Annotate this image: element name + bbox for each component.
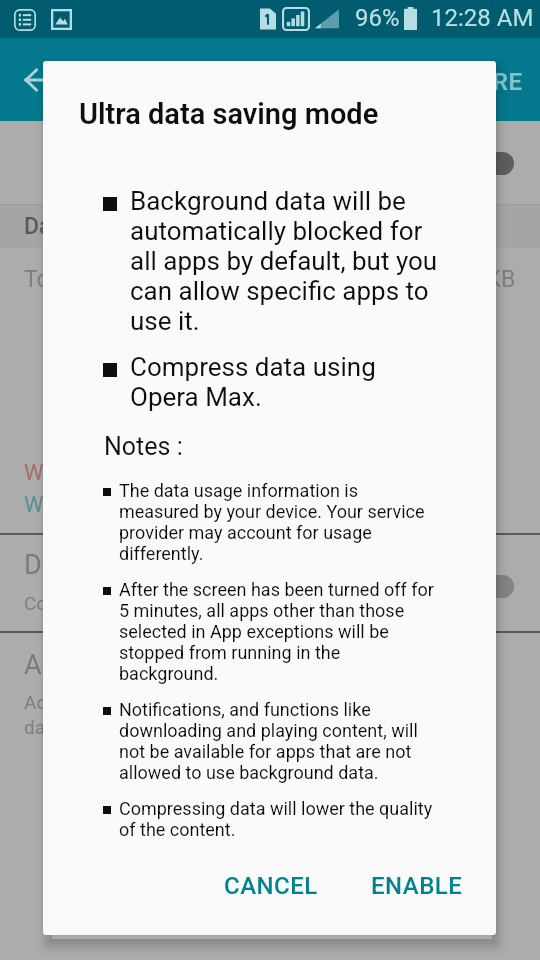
button[interactable]: CANCEL	[208, 860, 334, 912]
staticText: The data usage information is measured b…	[119, 480, 425, 564]
staticText: Ultra data saving mode	[79, 97, 379, 131]
staticText: 96%	[355, 4, 400, 32]
staticText: Compressing data will lower the quality …	[119, 798, 433, 840]
staticText: Notes :	[104, 432, 183, 461]
staticText: Total	[24, 266, 76, 293]
staticText: Data usage	[24, 213, 140, 240]
staticText: Add apps that are allowed to use apps da…	[24, 691, 358, 738]
staticText: MORE	[454, 68, 523, 96]
staticText: Connected	[24, 592, 116, 614]
staticText: ENABLE	[371, 872, 463, 900]
staticText: App exceptions	[24, 649, 210, 681]
staticText: Data saving mode	[24, 549, 241, 581]
staticText: Wi-Fi	[24, 460, 73, 486]
staticText: Wireless data	[24, 492, 157, 518]
staticText: 12:28 AM	[431, 4, 534, 32]
button[interactable]: Back	[0, 38, 76, 121]
staticText: CANCEL	[224, 872, 318, 900]
button[interactable]: MORE	[434, 48, 540, 112]
button[interactable]: ENABLE	[355, 860, 479, 912]
staticText: After the screen has been turned off for…	[119, 579, 434, 684]
staticText: Background data will be automatically bl…	[130, 186, 438, 336]
staticText: Compress data using Opera Max.	[130, 352, 376, 412]
staticText: Notifications, and functions like downlo…	[119, 699, 418, 783]
staticText: 1.76 KB	[436, 266, 516, 293]
